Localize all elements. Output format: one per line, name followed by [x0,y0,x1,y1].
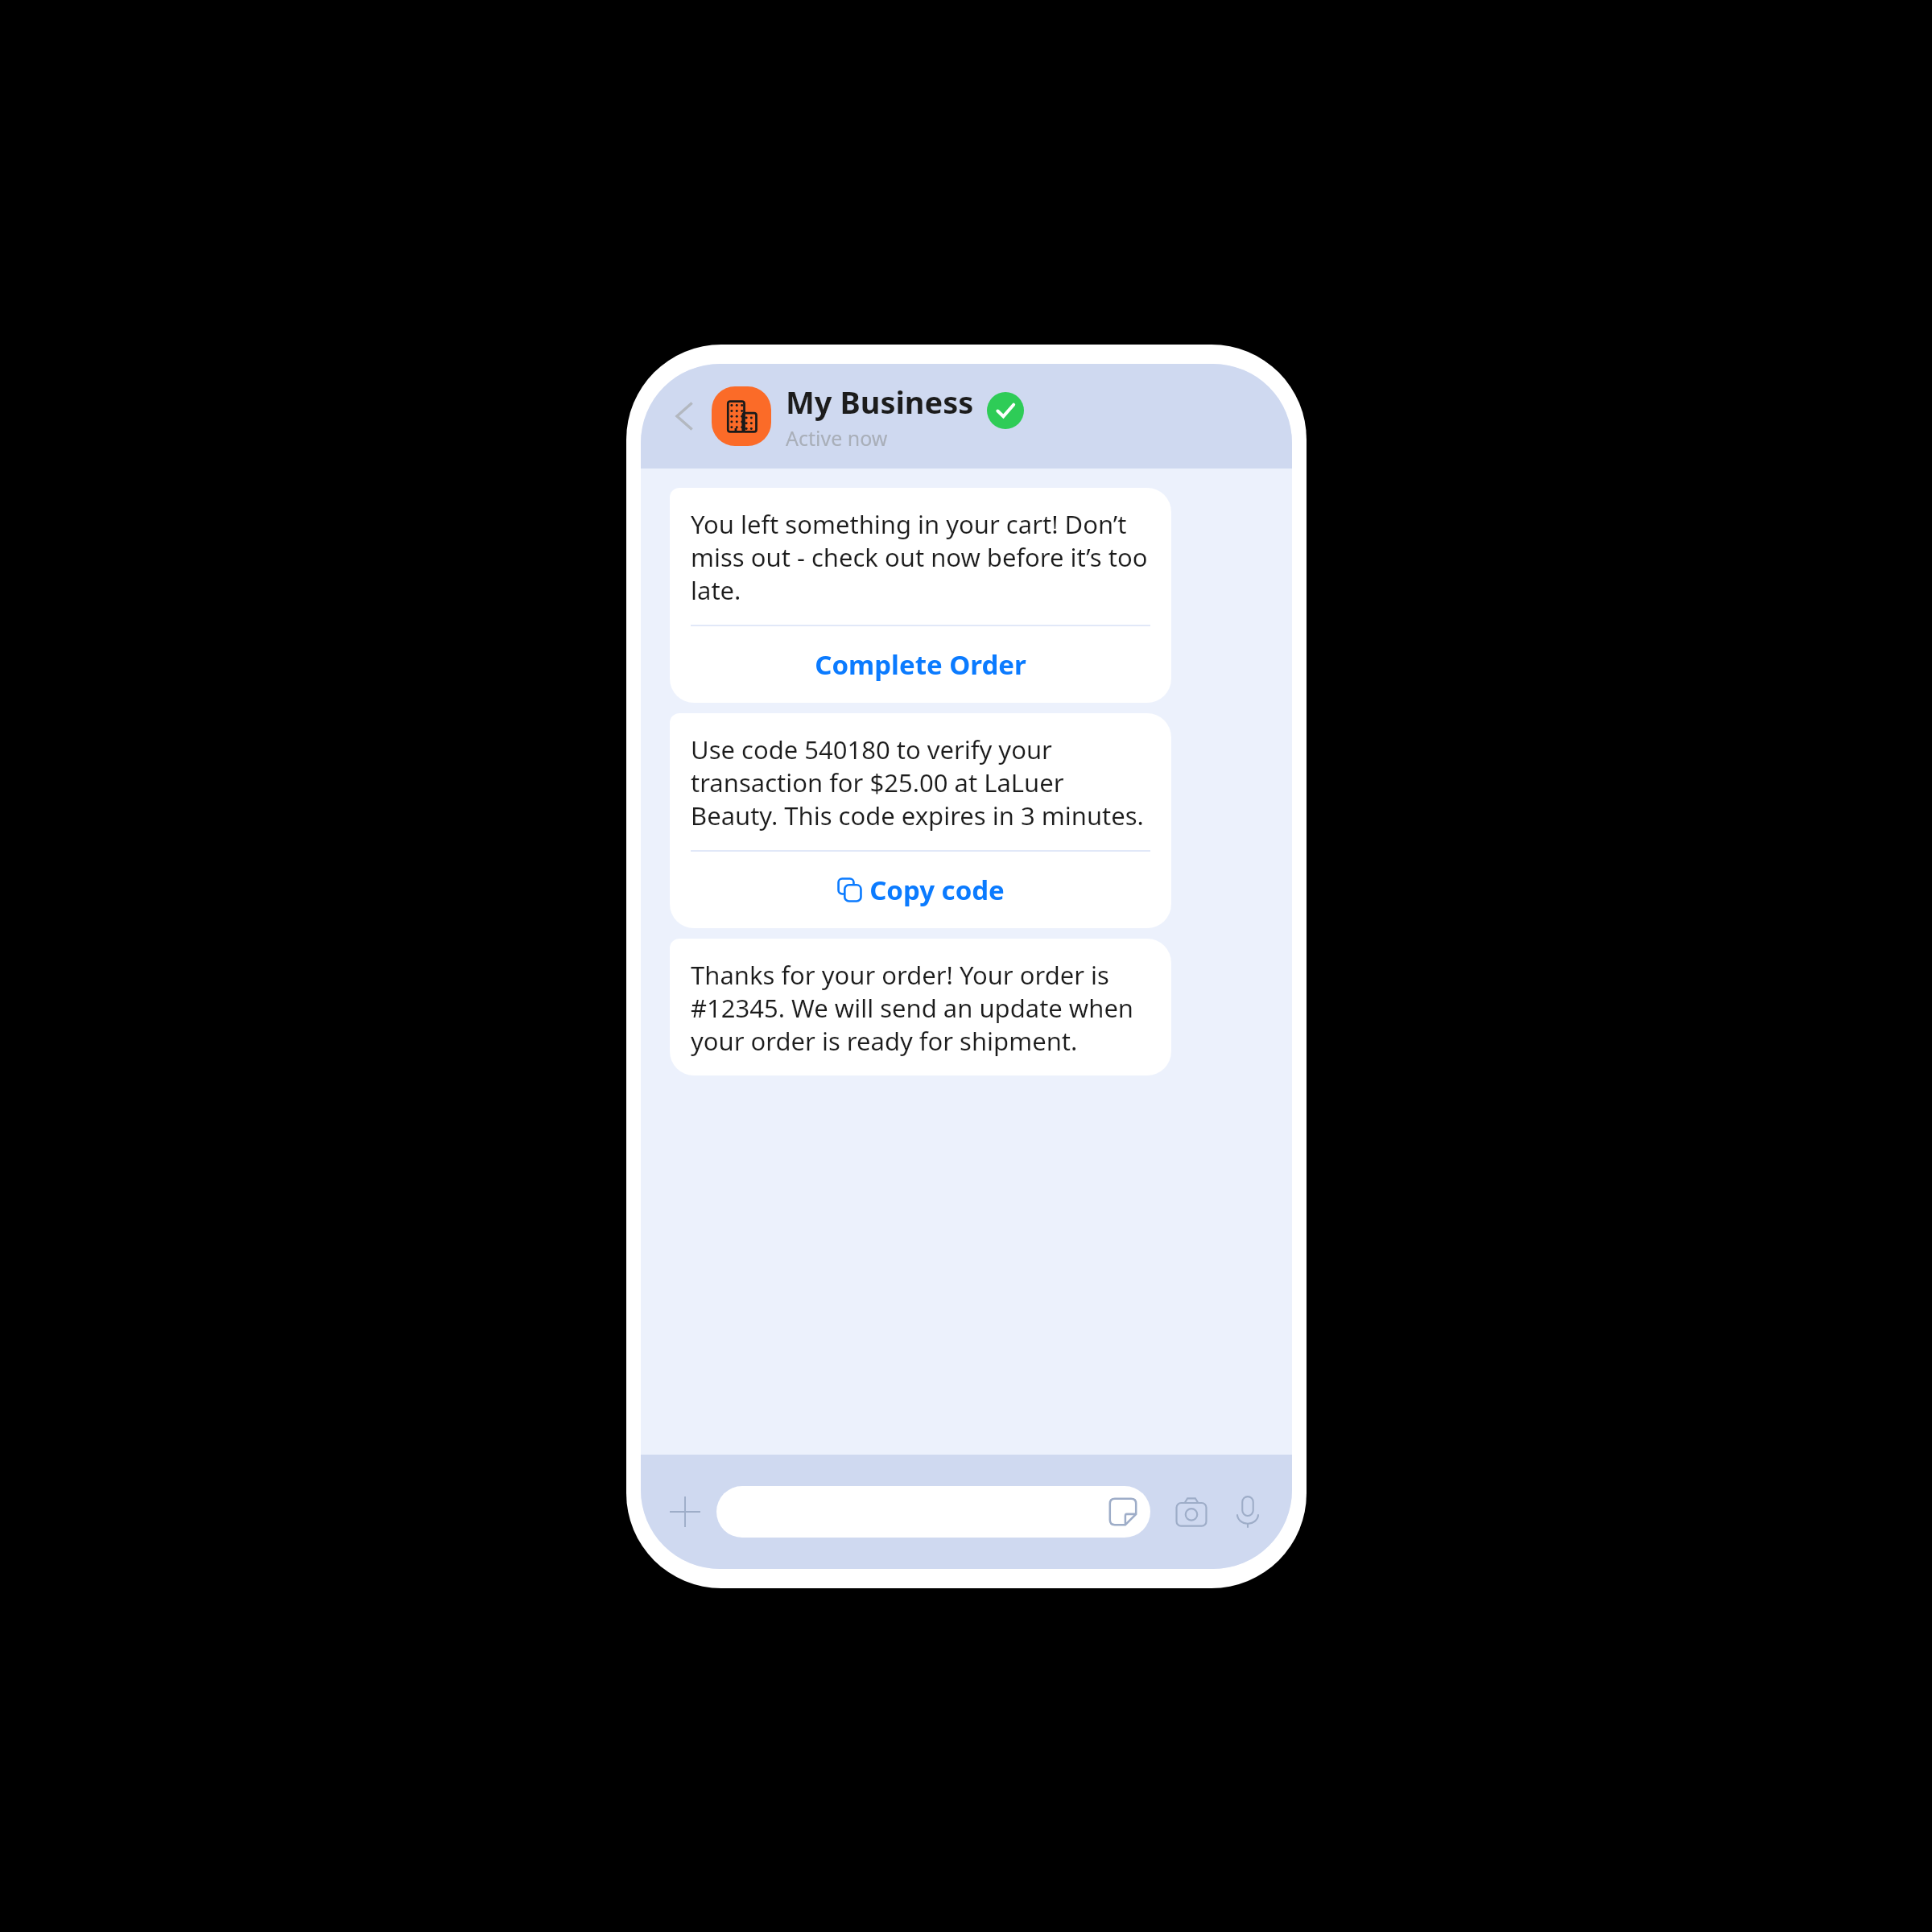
staticText: Active now [786,424,888,452]
button[interactable]: Camera [1168,1488,1215,1535]
staticText: You left something in your cart! Don’t m… [691,507,1155,607]
button[interactable]: Voice message [1224,1488,1271,1535]
button[interactable]: You left something in your cart! Don’t m… [670,488,1171,703]
staticText: Thanks for your order! Your order is #12… [691,958,1155,1058]
button[interactable]: Copy code [670,852,1171,928]
button[interactable]: Add attachment [662,1488,708,1535]
button[interactable]: Message input field [716,1486,1150,1538]
staticText: My Business [786,381,974,423]
button[interactable]: Thanks for your order! Your order is #12… [670,939,1171,1075]
staticText: Use code 540180 to verify your transacti… [691,733,1155,832]
button[interactable]: Complete Order [670,626,1171,703]
staticText: Copy code [869,872,1005,908]
button[interactable]: Use code 540180 to verify your transacti… [670,713,1171,928]
staticText: Complete Order [815,646,1026,683]
button[interactable]: Business profile [712,386,771,446]
button[interactable]: Back [663,394,707,438]
button[interactable]: Verified business [987,392,1024,429]
